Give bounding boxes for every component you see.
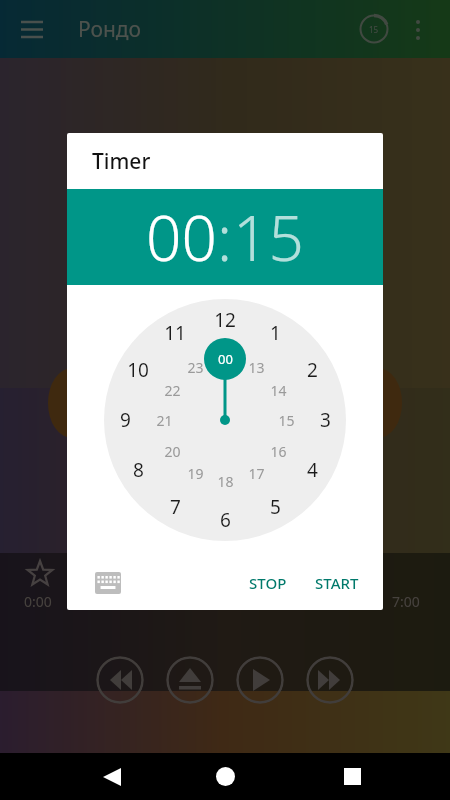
staticText: 1 [270, 320, 281, 346]
button[interactable]: Sleep timer [354, 9, 394, 49]
staticText: 4 [307, 457, 318, 483]
staticText: 5 [270, 494, 281, 520]
staticText: 16 [270, 442, 287, 461]
button[interactable]: Back [82, 753, 142, 800]
staticText: 20 [164, 442, 181, 461]
staticText: 21 [156, 411, 173, 430]
staticText: 15 [369, 24, 379, 35]
button[interactable]: Favorite [22, 556, 58, 592]
button[interactable]: Play [236, 656, 284, 704]
button[interactable]: More options [398, 9, 438, 49]
staticText: 9 [120, 407, 131, 433]
staticText: 10 [127, 357, 149, 383]
staticText: Timer [92, 147, 151, 176]
staticText: 00 [218, 350, 233, 368]
staticText: 0:00 [24, 592, 52, 611]
staticText: 3 [320, 407, 331, 433]
staticText: 19 [187, 464, 204, 483]
staticText: 13 [248, 358, 265, 377]
staticText: Рондо [78, 15, 142, 44]
staticText: : [217, 195, 233, 279]
button[interactable]: Home [195, 753, 255, 800]
staticText: 14 [270, 381, 287, 400]
button[interactable]: 00 [146, 195, 217, 279]
button[interactable]: Rewind [96, 656, 144, 704]
button[interactable]: Recents [322, 753, 382, 800]
button[interactable]: START [307, 565, 367, 601]
staticText: 7:00 [392, 592, 420, 611]
staticText: 11 [164, 320, 186, 346]
staticText: 17 [248, 464, 265, 483]
staticText: 23 [187, 358, 204, 377]
button[interactable]: STOP [241, 565, 295, 601]
staticText: 12 [214, 307, 236, 333]
button[interactable]: Fast forward [306, 656, 354, 704]
staticText: 15 [278, 411, 295, 430]
staticText: 7 [170, 494, 181, 520]
button[interactable]: Eject [166, 656, 214, 704]
button[interactable]: 15 [233, 195, 304, 279]
staticText: STOP [249, 573, 287, 593]
staticText: 6 [220, 507, 231, 533]
button[interactable]: Menu [12, 9, 52, 49]
staticText: 18 [217, 472, 234, 491]
staticText: START [315, 573, 359, 593]
staticText: 2 [307, 357, 318, 383]
staticText: 8 [133, 457, 144, 483]
staticText: 22 [164, 381, 181, 400]
button[interactable]: Keyboard input [91, 566, 125, 600]
